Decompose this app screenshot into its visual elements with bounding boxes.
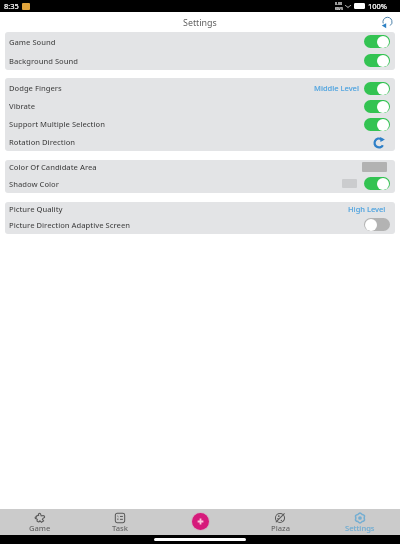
button[interactable]: Plaza bbox=[240, 509, 320, 535]
staticText: KB/S bbox=[335, 6, 343, 11]
button[interactable]: Vibrate bbox=[5, 97, 395, 115]
button[interactable]: Switch on bbox=[364, 35, 390, 48]
button[interactable]: Switch on bbox=[364, 118, 390, 131]
staticText: Middle Level bbox=[314, 83, 359, 93]
button[interactable]: Switch on bbox=[364, 100, 390, 113]
button[interactable]: Task bbox=[80, 509, 160, 535]
button[interactable]: Game Sound bbox=[5, 32, 395, 51]
button[interactable]: Switch on bbox=[364, 54, 390, 67]
staticText: Task bbox=[112, 523, 128, 533]
button[interactable]: Switch off bbox=[364, 218, 390, 231]
button[interactable]: Settings bbox=[320, 509, 400, 535]
staticText: 8:35 bbox=[4, 1, 19, 11]
button[interactable]: Switch on bbox=[364, 82, 390, 95]
button[interactable]: Shadow Color bbox=[5, 174, 395, 193]
staticText: Background Sound bbox=[9, 56, 78, 66]
staticText: Support Multiple Selection bbox=[9, 119, 105, 129]
button[interactable]: Game bbox=[0, 509, 80, 535]
button[interactable]: Switch on bbox=[364, 177, 390, 190]
button[interactable]: Color Of Candidate Area bbox=[5, 160, 395, 174]
staticText: Vibrate bbox=[9, 101, 36, 111]
button[interactable]: Background Sound bbox=[5, 51, 395, 70]
staticText: Rotation Direction bbox=[9, 137, 76, 147]
button[interactable]: Rotation Direction bbox=[5, 133, 395, 151]
staticText: Game Sound bbox=[9, 37, 56, 47]
staticText: 100% bbox=[368, 1, 388, 11]
button[interactable]: Picture Quality bbox=[5, 202, 395, 215]
button[interactable]: Dodge Fingers bbox=[5, 79, 395, 97]
button[interactable]: Add bbox=[192, 513, 209, 530]
button[interactable]: Support Multiple Selection bbox=[5, 115, 395, 133]
staticText: Dodge Fingers bbox=[9, 83, 62, 93]
button[interactable]: Rotation direction bbox=[372, 136, 385, 149]
staticText: Shadow Color bbox=[9, 179, 59, 189]
staticText: Color Of Candidate Area bbox=[9, 162, 97, 172]
staticText: Game bbox=[29, 523, 51, 533]
staticText: 0.00 bbox=[335, 1, 343, 6]
staticText: Plaza bbox=[271, 523, 290, 533]
staticText: Picture Direction Adaptive Screen bbox=[9, 220, 131, 230]
staticText: High Level bbox=[348, 204, 386, 214]
staticText: Picture Quality bbox=[9, 204, 63, 214]
staticText: Settings bbox=[345, 523, 375, 533]
button[interactable]: Restore defaults bbox=[380, 15, 395, 30]
button[interactable]: Picture Direction Adaptive Screen bbox=[5, 215, 395, 234]
staticText: Settings bbox=[183, 16, 217, 28]
